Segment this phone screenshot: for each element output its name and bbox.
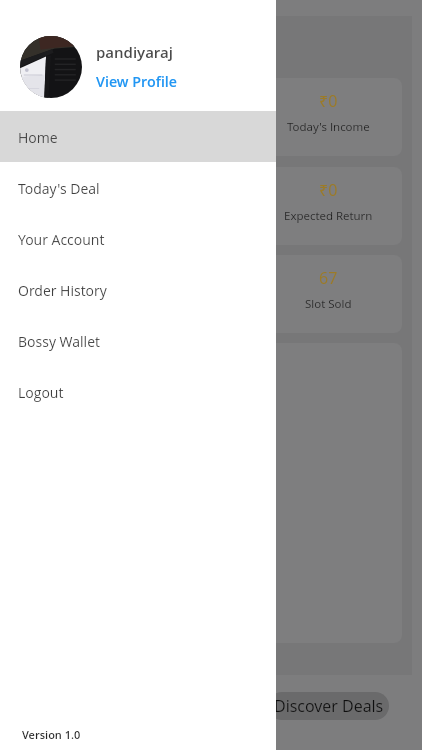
button[interactable]: ₹0	[22, 167, 402, 245]
button[interactable]: Discover Deals	[268, 692, 389, 720]
button[interactable]	[22, 343, 402, 643]
button[interactable]: Logout	[0, 366, 276, 417]
staticText: Today's Deal	[18, 179, 100, 198]
staticText: pandiyaraj	[96, 42, 173, 62]
button[interactable]: ₹0	[22, 78, 402, 156]
staticText: Logout	[18, 383, 64, 402]
staticText: View Profile	[96, 72, 178, 91]
staticText: Bossy Wallet	[18, 332, 100, 351]
staticText: Home	[18, 128, 58, 147]
staticText: Order History	[18, 281, 107, 300]
button[interactable]: Order History	[0, 264, 276, 315]
button[interactable]: Home	[0, 111, 276, 162]
button[interactable]: Bossy Wallet	[0, 315, 276, 366]
staticText: Discover Deals	[274, 695, 384, 717]
button[interactable]: Today's Deal	[0, 162, 276, 213]
staticText: Expected Return	[284, 208, 373, 224]
staticText: Slot Sold	[305, 296, 352, 312]
staticText: Today's Income	[287, 119, 370, 135]
button[interactable]: View Profile	[96, 72, 178, 91]
staticText: ₹0	[319, 179, 338, 201]
staticText: ₹0	[319, 90, 338, 112]
button[interactable]: 67	[22, 255, 402, 333]
button[interactable]: Your Account	[0, 213, 276, 264]
button[interactable]: Profile photo	[20, 36, 82, 98]
staticText: Your Account	[18, 230, 105, 249]
staticText: Version 1.0	[22, 727, 81, 742]
staticText: 67	[319, 267, 338, 289]
